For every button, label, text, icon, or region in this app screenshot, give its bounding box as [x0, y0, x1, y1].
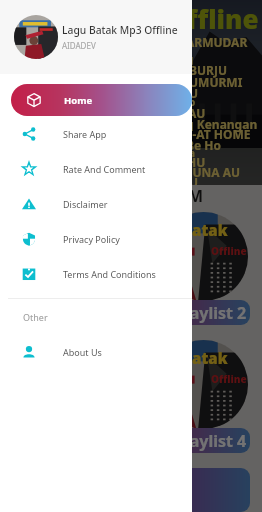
staticText: UMURMI	[189, 74, 243, 90]
button[interactable]: Rate And Comment	[0, 151, 192, 186]
staticText: Rate And Comment	[63, 163, 146, 175]
staticText: M	[188, 185, 204, 207]
staticText: Batak	[182, 220, 228, 240]
staticText: Be Ho	[186, 137, 221, 153]
button[interactable]: Playlist 4	[150, 428, 250, 453]
staticText: AU	[188, 105, 206, 121]
staticText: Y-AT HOME	[185, 126, 251, 142]
button[interactable]: Share App	[0, 116, 192, 151]
button[interactable]: Lagu Batak Mp3 Offline	[0, 0, 192, 74]
staticText: Offline	[211, 244, 247, 258]
staticText: AIDADEV	[62, 40, 96, 51]
staticText: BURJU	[189, 62, 227, 78]
staticText: U	[189, 85, 199, 101]
staticText: U	[189, 174, 199, 190]
staticText: Playlist 2	[175, 302, 247, 324]
staticText: g Kenangan	[186, 116, 258, 132]
button[interactable]: Disclaimer	[0, 186, 192, 221]
button[interactable]: Home	[11, 84, 192, 116]
staticText: a	[189, 146, 195, 160]
staticText: Terms And Conditions	[63, 268, 156, 280]
staticText: Other	[23, 311, 48, 323]
staticText: ARMUDAR	[186, 34, 248, 50]
staticText: Home	[64, 94, 93, 107]
button[interactable]: Privacy Policy	[0, 221, 192, 256]
staticText: Offline	[166, 1, 259, 36]
button[interactable]: Terms And Conditions	[0, 256, 192, 291]
other: Share App	[22, 127, 36, 141]
staticText: Lagu Batak Mp3 Offline	[62, 23, 178, 37]
staticText: Offline	[211, 372, 247, 386]
staticText: g	[187, 52, 194, 66]
button[interactable]: Playlist 2	[150, 300, 250, 325]
staticText: About Us	[63, 346, 102, 358]
staticText: Disclaimer	[63, 198, 108, 210]
staticText: o	[189, 95, 196, 109]
staticText: PUNA AU	[185, 164, 241, 180]
staticText: Share App	[63, 128, 107, 140]
staticText: HU	[187, 154, 206, 170]
staticText: Playlist 4	[175, 430, 247, 452]
staticText: Privacy Policy	[63, 233, 120, 245]
staticText: Batak	[182, 348, 228, 368]
button[interactable]: About Us	[0, 334, 192, 369]
